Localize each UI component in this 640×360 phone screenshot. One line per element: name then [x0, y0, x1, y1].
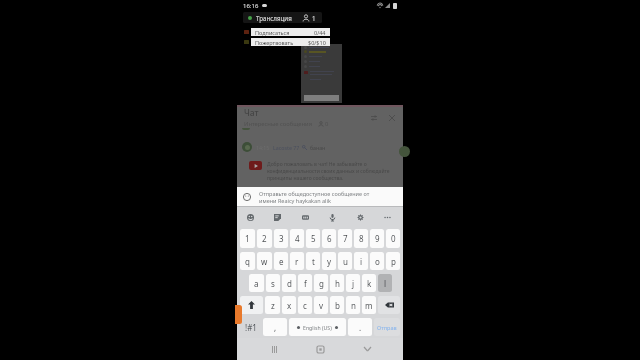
- staticText: b: [335, 300, 340, 311]
- button[interactable]: e: [274, 252, 288, 270]
- button[interactable]: Close chat: [385, 111, 398, 124]
- staticText: z: [271, 300, 275, 311]
- button[interactable]: Отправьте общедоступное сообщение от име…: [237, 187, 403, 206]
- button[interactable]: 1: [240, 229, 255, 248]
- button[interactable]: g: [314, 274, 328, 292]
- staticText: 2: [262, 233, 267, 244]
- button[interactable]: GIF: [298, 210, 313, 225]
- staticText: Пожертвовать: [255, 39, 294, 46]
- button[interactable]: z: [265, 296, 280, 314]
- staticText: 5: [311, 233, 316, 244]
- staticText: English (US): [303, 324, 332, 331]
- staticText: !#1: [245, 322, 257, 333]
- staticText: Подписаться: [255, 29, 290, 36]
- button[interactable]: y: [322, 252, 336, 270]
- staticText: y: [327, 256, 332, 267]
- button[interactable]: Home: [310, 339, 330, 359]
- button[interactable]: Трансляция: [243, 12, 322, 23]
- button[interactable]: ,: [263, 318, 287, 336]
- button[interactable]: u: [338, 252, 352, 270]
- button[interactable]: Shift: [240, 296, 263, 314]
- button[interactable]: 5: [306, 229, 320, 248]
- button[interactable]: x: [282, 296, 296, 314]
- button[interactable]: k: [362, 274, 376, 292]
- staticText: f: [304, 278, 307, 289]
- staticText: n: [351, 300, 356, 311]
- button[interactable]: j: [346, 274, 360, 292]
- button[interactable]: m: [362, 296, 376, 314]
- staticText: 1: [245, 233, 250, 244]
- button[interactable]: t: [306, 252, 320, 270]
- button[interactable]: 3: [274, 229, 288, 248]
- button[interactable]: Voice input: [325, 210, 340, 225]
- button[interactable]: Отправ: [374, 318, 400, 336]
- staticText: Отправ: [377, 324, 397, 331]
- staticText: Добро пожаловать в чат! Не забывайте о к…: [267, 161, 394, 182]
- staticText: 0: [325, 120, 329, 128]
- staticText: Отправьте общедоступное сообщение от име…: [259, 190, 379, 204]
- staticText: Трансляция: [256, 14, 292, 22]
- button[interactable]: h: [330, 274, 344, 292]
- button[interactable]: o: [370, 252, 384, 270]
- button[interactable]: w: [257, 252, 272, 270]
- button[interactable]: a: [249, 274, 264, 292]
- staticText: 3: [279, 233, 284, 244]
- button[interactable]: 2: [257, 229, 272, 248]
- staticText: t: [312, 256, 315, 267]
- staticText: 6: [327, 233, 332, 244]
- button[interactable]: Hide keyboard: [357, 339, 377, 359]
- button[interactable]: c: [298, 296, 312, 314]
- button[interactable]: 7: [338, 229, 352, 248]
- staticText: i: [360, 256, 363, 267]
- button[interactable]: d: [282, 274, 296, 292]
- staticText: Чат: [244, 107, 259, 119]
- button[interactable]: Clipboard: [235, 305, 242, 324]
- button[interactable]: Пожертвовать: [251, 38, 330, 46]
- staticText: l: [384, 278, 387, 289]
- button[interactable]: 9: [370, 229, 384, 248]
- staticText: 4: [295, 233, 300, 244]
- staticText: r: [295, 256, 299, 267]
- staticText: a: [254, 278, 259, 289]
- staticText: 9: [375, 233, 380, 244]
- staticText: 7: [343, 233, 348, 244]
- button[interactable]: 4: [290, 229, 304, 248]
- button[interactable]: s: [266, 274, 280, 292]
- button[interactable]: Chat settings: [367, 111, 380, 124]
- staticText: x: [287, 300, 292, 311]
- staticText: o: [375, 256, 380, 267]
- button[interactable]: Space: [289, 318, 346, 336]
- staticText: Lacoste 77: [273, 144, 300, 151]
- staticText: d: [287, 278, 292, 289]
- button[interactable]: v: [314, 296, 328, 314]
- staticText: Интересные сообщения: [244, 120, 313, 128]
- button[interactable]: .: [348, 318, 372, 336]
- button[interactable]: Emoji: [243, 210, 258, 225]
- button[interactable]: !#1: [240, 318, 261, 336]
- button[interactable]: i: [354, 252, 368, 270]
- staticText: ,: [274, 322, 277, 333]
- staticText: w: [261, 256, 268, 267]
- button[interactable]: 6: [322, 229, 336, 248]
- button[interactable]: Подписаться: [251, 28, 330, 36]
- button[interactable]: Recent apps: [264, 339, 284, 359]
- staticText: 8: [359, 233, 364, 244]
- button[interactable]: n: [346, 296, 360, 314]
- button[interactable]: l: [378, 274, 392, 292]
- button[interactable]: 8: [354, 229, 368, 248]
- button[interactable]: Settings: [353, 210, 368, 225]
- button[interactable]: b: [330, 296, 344, 314]
- button[interactable]: f: [298, 274, 312, 292]
- button[interactable]: 0: [386, 229, 400, 248]
- button[interactable]: r: [290, 252, 304, 270]
- button[interactable]: p: [386, 252, 400, 270]
- staticText: 16:16: [243, 2, 259, 10]
- staticText: g: [319, 278, 324, 289]
- staticText: e: [279, 256, 284, 267]
- button[interactable]: Stickers: [270, 210, 285, 225]
- button[interactable]: q: [240, 252, 255, 270]
- button[interactable]: More options: [380, 210, 395, 225]
- staticText: 1: [312, 14, 316, 22]
- button[interactable]: Backspace: [378, 296, 400, 314]
